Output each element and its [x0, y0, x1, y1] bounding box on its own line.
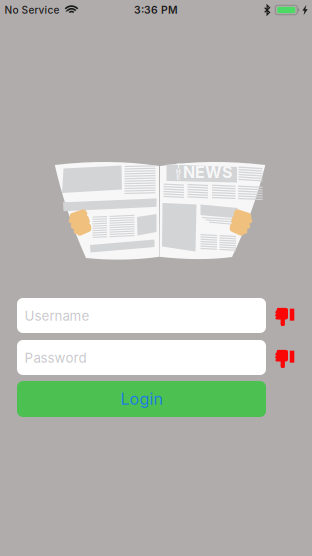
staticText: Password — [24, 350, 86, 366]
button[interactable]: Username — [17, 298, 266, 333]
staticText: T — [176, 162, 180, 170]
staticText: NEWS — [183, 162, 232, 182]
staticText: 3:36 PM — [134, 4, 178, 16]
button[interactable]: Password — [17, 340, 266, 375]
staticText: H — [176, 168, 181, 175]
staticText: No Service — [4, 4, 59, 16]
staticText: Username — [24, 308, 89, 324]
button[interactable]: Username invalid — [275, 306, 295, 328]
button[interactable]: Password invalid — [275, 348, 295, 370]
staticText: E — [176, 173, 180, 181]
button[interactable]: Login — [17, 381, 266, 417]
staticText: Login — [120, 389, 162, 409]
